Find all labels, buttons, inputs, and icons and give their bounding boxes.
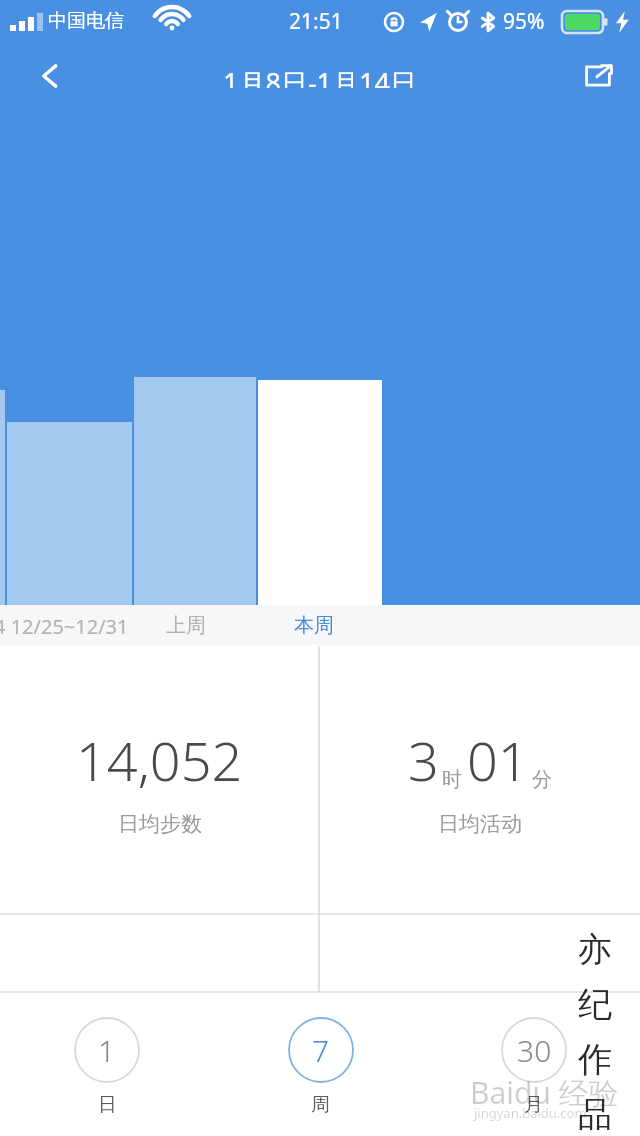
- button[interactable]: 14,052: [0, 646, 319, 914]
- staticText: 上周: [166, 613, 206, 638]
- staticText: 月: [524, 1093, 543, 1117]
- staticText: 亦: [578, 928, 612, 971]
- staticText: 日均活动: [438, 811, 522, 837]
- button[interactable]: 本周: [286, 608, 342, 643]
- staticText: jingyan.baidu.com: [474, 1104, 587, 1122]
- staticText: 中国电信: [48, 9, 124, 33]
- staticText: 1: [98, 1030, 116, 1071]
- button[interactable]: 3: [320, 646, 640, 914]
- button[interactable]: 30: [427, 993, 640, 1136]
- staticText: 品: [578, 1093, 612, 1136]
- button[interactable]: Back: [22, 64, 78, 88]
- staticText: 分: [532, 767, 552, 792]
- staticText: 作: [578, 1038, 612, 1081]
- button[interactable]: Share: [570, 64, 626, 88]
- staticText: 时: [442, 767, 462, 792]
- staticText: Baidu 经验: [470, 1072, 619, 1113]
- staticText: 本周: [294, 613, 334, 638]
- staticText: 3: [408, 723, 439, 797]
- staticText: 日: [98, 1093, 117, 1117]
- staticText: 95%: [503, 7, 545, 36]
- staticText: 日均步数: [118, 811, 202, 837]
- staticText: 01: [467, 723, 529, 797]
- staticText: 4 12/25~12/31: [0, 613, 129, 640]
- staticText: 纪: [578, 983, 612, 1026]
- staticText: 周: [311, 1093, 330, 1117]
- staticText: 21:51: [289, 7, 343, 36]
- staticText: 30: [517, 1030, 552, 1071]
- staticText: 7: [312, 1030, 330, 1071]
- staticText: 1月8日-1月14日: [223, 64, 417, 88]
- button[interactable]: 1: [0, 993, 214, 1136]
- button[interactable]: 7: [214, 993, 427, 1136]
- staticText: 14,052: [76, 723, 243, 797]
- button[interactable]: 上周: [158, 608, 214, 643]
